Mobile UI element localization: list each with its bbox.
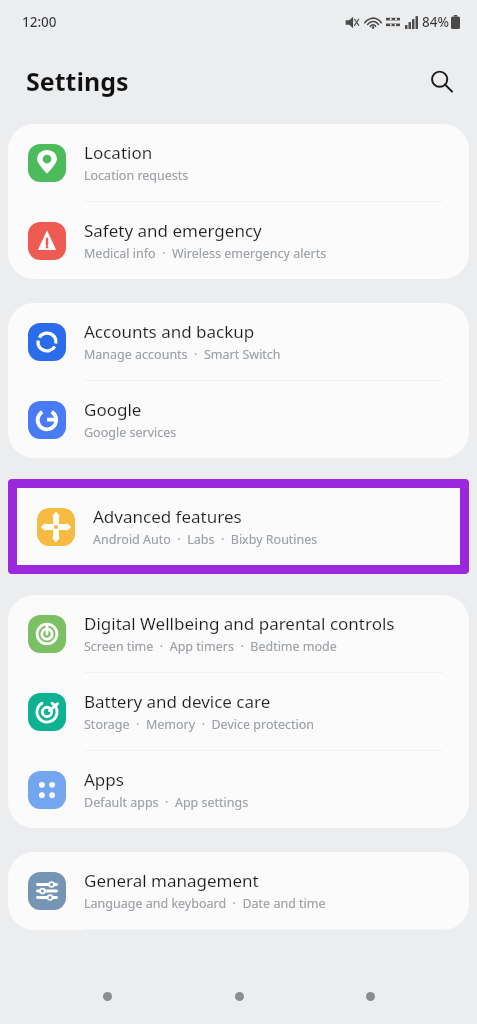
staticText: General management <box>84 869 259 892</box>
button[interactable]: Accounts and backup <box>8 303 469 381</box>
button[interactable]: Digital Wellbeing and parental controls <box>8 595 469 673</box>
staticText: Default apps · App settings <box>84 794 249 811</box>
staticText: Advanced features <box>93 505 242 528</box>
staticText: Apps <box>84 768 124 791</box>
staticText: Location requests <box>84 167 189 184</box>
button[interactable]: Navigation button <box>346 972 394 1020</box>
button[interactable]: General management <box>8 852 469 930</box>
staticText: 84% <box>422 13 449 31</box>
staticText: Android Auto · Labs · Bixby Routines <box>93 531 318 548</box>
staticText: Settings <box>26 64 129 98</box>
staticText: Manage accounts · Smart Switch <box>84 346 281 363</box>
staticText: Accounts and backup <box>84 320 255 343</box>
staticText: Battery and device care <box>84 690 271 713</box>
button[interactable]: Search <box>419 59 463 103</box>
button[interactable]: Safety and emergency <box>8 202 469 279</box>
button[interactable]: Navigation button <box>215 972 263 1020</box>
staticText: Digital Wellbeing and parental controls <box>84 612 395 635</box>
button[interactable]: Navigation button <box>83 972 131 1020</box>
staticText: Safety and emergency <box>84 219 262 242</box>
staticText: Language and keyboard · Date and time <box>84 895 326 912</box>
button[interactable]: Advanced features <box>17 488 460 565</box>
button[interactable]: Apps <box>8 751 469 828</box>
staticText: Google <box>84 398 142 421</box>
button[interactable]: Battery and device care <box>8 673 469 751</box>
staticText: Storage · Memory · Device protection <box>84 716 315 733</box>
staticText: Location <box>84 141 153 164</box>
staticText: 12:00 <box>22 13 57 31</box>
staticText: Screen time · App timers · Bedtime mode <box>84 638 337 655</box>
button[interactable]: Location <box>8 124 469 202</box>
staticText: Medical info · Wireless emergency alerts <box>84 245 327 262</box>
staticText: Google services <box>84 424 177 441</box>
button[interactable]: Google <box>8 381 469 458</box>
